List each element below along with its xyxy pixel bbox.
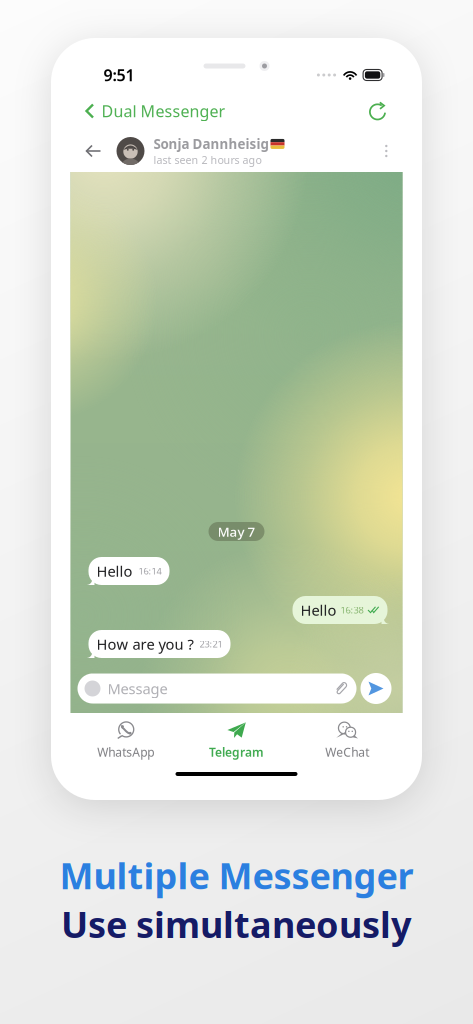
staticText: Hello: [300, 600, 336, 620]
staticText: Multiple Messenger: [59, 851, 413, 899]
button[interactable]: Telegram: [181, 717, 292, 764]
button[interactable]: More options: [378, 137, 394, 165]
staticText: WhatsApp: [97, 744, 154, 760]
button[interactable]: Refresh: [368, 95, 402, 126]
staticText: 16:14: [138, 565, 161, 577]
staticText: Telegram: [209, 744, 264, 760]
staticText: 23:21: [199, 638, 222, 650]
staticText: 16:38: [340, 604, 363, 616]
button[interactable]: Dual Messenger: [70, 94, 225, 128]
staticText: Sonja Dannheisig: [153, 135, 268, 153]
button[interactable]: Send: [360, 673, 391, 704]
staticText: 9:51: [103, 64, 134, 86]
staticText: How are you ?: [96, 634, 193, 654]
button[interactable]: WeChat: [292, 717, 402, 764]
staticText: May 7: [217, 523, 255, 540]
button[interactable]: WhatsApp: [70, 717, 181, 764]
staticText: Dual Messenger: [101, 100, 225, 122]
staticText: WeChat: [325, 744, 369, 760]
staticText: Hello: [96, 561, 132, 581]
button[interactable]: Back: [81, 135, 105, 166]
staticText: last seen 2 hours ago: [153, 153, 261, 167]
staticText: Message: [107, 679, 167, 698]
staticText: Use simultaneously: [61, 900, 412, 948]
